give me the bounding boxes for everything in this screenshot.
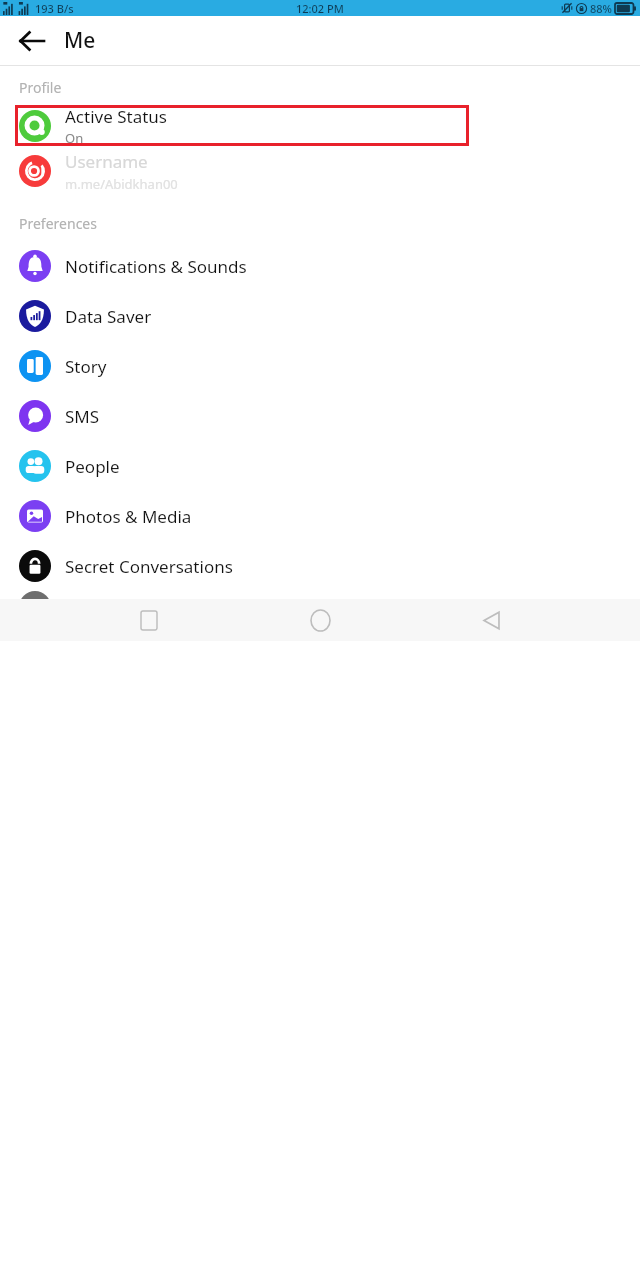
button[interactable]: SMS xyxy=(0,391,640,441)
button[interactable]: Back xyxy=(469,599,513,641)
staticText: Active Status xyxy=(65,105,167,128)
button[interactable]: Photos & Media xyxy=(0,491,640,541)
button[interactable]: Home xyxy=(298,599,342,641)
button[interactable]: Secret Conversations xyxy=(0,541,640,591)
button[interactable]: Story xyxy=(0,341,640,391)
staticText: 12:02 PM xyxy=(296,1,344,16)
button[interactable]: More settings xyxy=(0,591,640,599)
staticText: m.me/Abidkhan00 xyxy=(65,175,178,193)
button[interactable]: Data Saver xyxy=(0,291,640,341)
staticText: 193 B/s xyxy=(35,1,74,16)
staticText: On xyxy=(65,129,84,146)
staticText: Me xyxy=(64,26,96,55)
staticText: Profile xyxy=(19,78,62,97)
button[interactable]: Active Status xyxy=(15,105,469,146)
staticText: Preferences xyxy=(19,214,97,233)
staticText: Photos & Media xyxy=(65,505,192,528)
button[interactable]: Username xyxy=(0,146,640,196)
staticText: 88% xyxy=(590,1,612,16)
staticText: Data Saver xyxy=(65,305,152,328)
staticText: Username xyxy=(65,150,148,173)
button[interactable]: Back xyxy=(8,17,56,65)
button[interactable]: Recent apps xyxy=(127,599,171,641)
staticText: SMS xyxy=(65,405,100,428)
staticText: People xyxy=(65,455,120,478)
staticText: Secret Conversations xyxy=(65,555,233,578)
staticText: Notifications & Sounds xyxy=(65,255,247,278)
button[interactable]: Notifications & Sounds xyxy=(0,241,640,291)
staticText: Story xyxy=(65,355,107,378)
button[interactable]: People xyxy=(0,441,640,491)
